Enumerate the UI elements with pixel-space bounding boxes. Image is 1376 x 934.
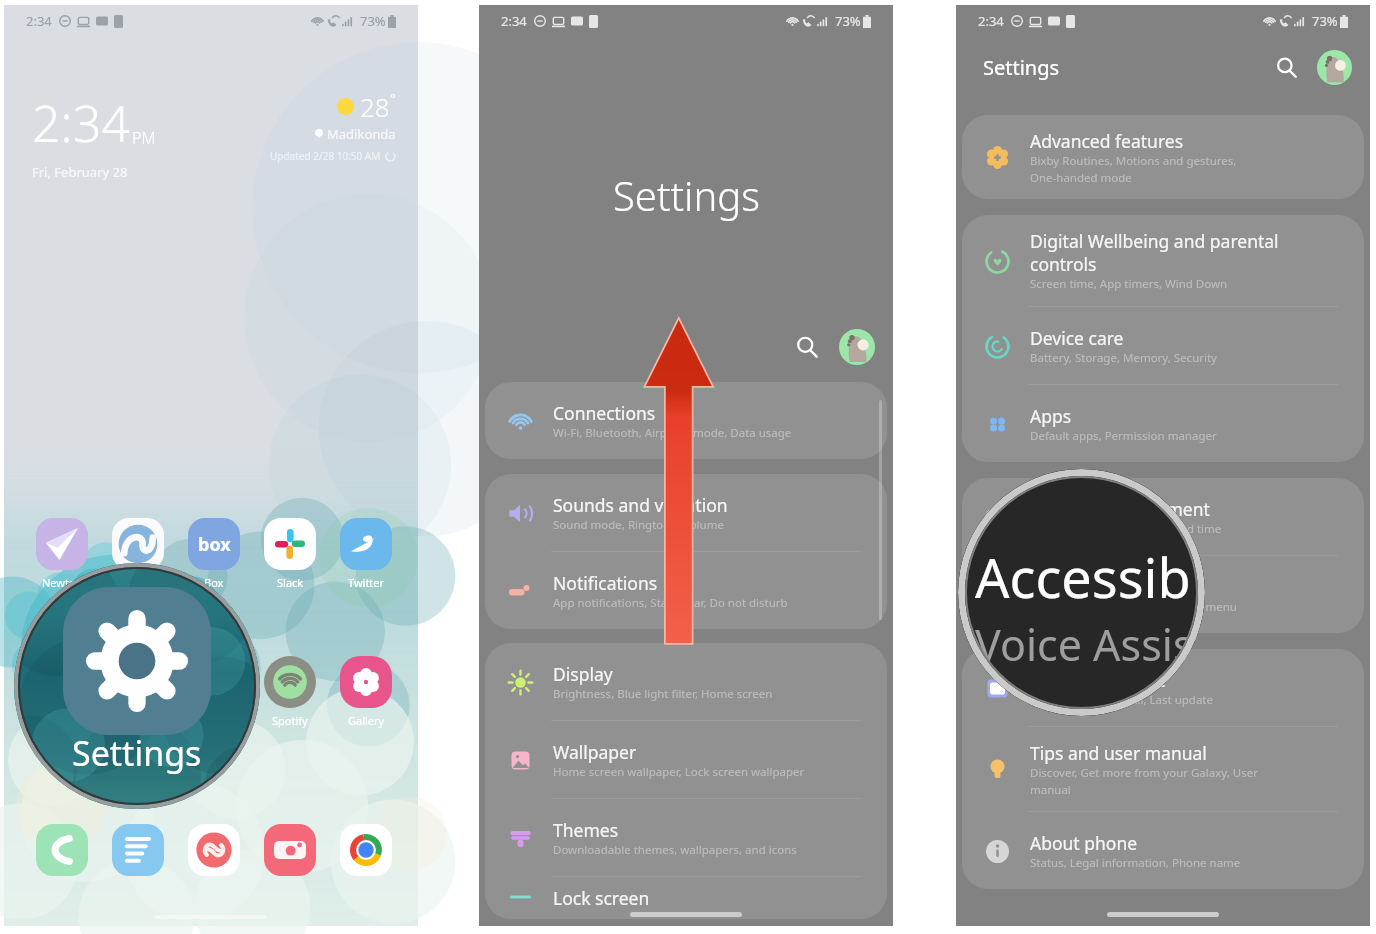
staticText: App notifications, Status bar, Do not di…	[553, 595, 788, 611]
button[interactable]: Wallpaper	[485, 721, 887, 798]
staticText: Slack	[277, 575, 304, 590]
button[interactable]: Software update	[962, 649, 1364, 726]
staticText: Tips and user manual	[1030, 741, 1207, 765]
button[interactable]: Digital Wellbeing and parental controls	[962, 215, 1364, 306]
button[interactable]: Device care	[962, 307, 1364, 384]
button[interactable]: Authy	[188, 824, 240, 876]
button[interactable]: Accessibility	[958, 469, 1205, 716]
staticText: Screen time, App timers, Wind Down	[1030, 276, 1228, 292]
button[interactable]: Advanced features	[962, 115, 1364, 199]
button[interactable]: Account	[1317, 50, 1352, 85]
staticText: TalkBack, Mono audio, Assistant menu	[1030, 599, 1237, 615]
staticText: Box	[204, 575, 224, 590]
button[interactable]: Camera	[264, 824, 316, 876]
staticText: 73%	[1312, 12, 1338, 30]
button[interactable]: Notifications	[485, 552, 887, 629]
staticText: 2:34	[32, 89, 130, 157]
staticText: Downloadable themes, wallpapers, and ico…	[553, 842, 797, 858]
staticText: Settings	[613, 168, 760, 222]
staticText: Accessib	[975, 540, 1191, 614]
staticText: 73%	[835, 12, 861, 30]
button[interactable]: Slack	[252, 518, 328, 590]
staticText: Discover, Get more from your Galaxy, Use…	[1030, 765, 1258, 797]
staticText: Madikonda	[327, 125, 396, 143]
staticText: 73%	[360, 12, 386, 30]
staticText: Wallpaper	[553, 740, 637, 764]
button[interactable]: Account	[839, 329, 875, 365]
button[interactable]: Lock screen	[485, 877, 887, 919]
staticText: 28	[360, 89, 390, 124]
staticText: PM	[132, 127, 156, 149]
staticText: Connections	[553, 401, 656, 425]
button[interactable]: Tips and user manual	[962, 727, 1364, 811]
staticText: Gallery	[348, 713, 385, 728]
button[interactable]: Accessibility	[962, 556, 1364, 633]
staticText: Twitter	[348, 575, 385, 590]
staticText: Brightness, Blue light filter, Home scre…	[553, 686, 773, 702]
staticText: Home screen wallpaper, Lock screen wallp…	[553, 764, 805, 780]
button[interactable]: Twitter	[328, 518, 404, 590]
staticText: About phone	[1030, 831, 1138, 855]
staticText: Settings	[983, 54, 1060, 81]
button[interactable]: Apps	[962, 385, 1364, 462]
button[interactable]: Chrome	[340, 824, 392, 876]
staticText: Settings	[72, 730, 202, 776]
staticText: Updated 2/28 10:50 AM	[270, 149, 381, 163]
button[interactable]: Gallery	[328, 656, 404, 728]
staticText: 2:34	[978, 12, 1004, 30]
staticText: Language and input, Date and time	[1030, 521, 1222, 537]
staticText: Software update	[1030, 668, 1166, 692]
button[interactable]: Connections	[485, 382, 887, 459]
staticText: Device care	[1030, 326, 1124, 350]
button[interactable]: Newton	[24, 518, 100, 590]
staticText: Fri, February 28	[32, 163, 128, 181]
button[interactable]: Themes	[485, 799, 887, 876]
staticText: Themes	[553, 818, 619, 842]
staticText: Display	[553, 662, 613, 686]
staticText: Status, Legal information, Phone name	[1030, 855, 1241, 871]
button[interactable]: Simple	[100, 518, 176, 590]
staticText: Wi-Fi, Bluetooth, Airplane mode, Data us…	[553, 425, 792, 441]
button[interactable]: box	[176, 518, 252, 590]
staticText: Lock screen	[553, 886, 650, 910]
staticText: Digital Wellbeing and parental controls	[1030, 229, 1279, 276]
staticText: Download and install, Last update	[1030, 692, 1213, 708]
staticText: Bixby Routines, Motions and gestures, On…	[1030, 153, 1237, 185]
staticText: Advanced features	[1030, 129, 1184, 153]
button[interactable]: Search	[789, 329, 825, 365]
staticText: Battery, Storage, Memory, Security	[1030, 350, 1217, 366]
staticText: Simple	[121, 575, 156, 590]
staticText: 2:34	[501, 12, 527, 30]
button[interactable]: Spotify	[252, 656, 328, 728]
staticText: Accessibility	[1030, 575, 1129, 599]
staticText: Voice Assist	[975, 615, 1205, 674]
staticText: box	[198, 532, 231, 557]
button[interactable]: General management	[962, 478, 1364, 555]
staticText: Apps	[1030, 404, 1072, 428]
button[interactable]: About phone	[962, 812, 1364, 889]
staticText: °	[390, 89, 396, 107]
button[interactable]: Phone	[36, 824, 88, 876]
staticText: 2:34	[26, 12, 52, 30]
button[interactable]: Settings app icon	[14, 563, 260, 809]
staticText: Sounds and vibration	[553, 493, 728, 517]
button[interactable]: Display	[485, 643, 887, 720]
staticText: Spotify	[272, 713, 308, 728]
staticText: Newton	[42, 575, 83, 590]
staticText: Notifications	[553, 571, 658, 595]
staticText: Default apps, Permission manager	[1030, 428, 1217, 444]
button[interactable]: Messages	[112, 824, 164, 876]
staticText: Sound mode, Ringtone, Volume	[553, 517, 724, 533]
staticText: General management	[1030, 497, 1210, 521]
button[interactable]: Sounds and vibration	[485, 474, 887, 551]
button[interactable]: Search	[1269, 50, 1303, 84]
